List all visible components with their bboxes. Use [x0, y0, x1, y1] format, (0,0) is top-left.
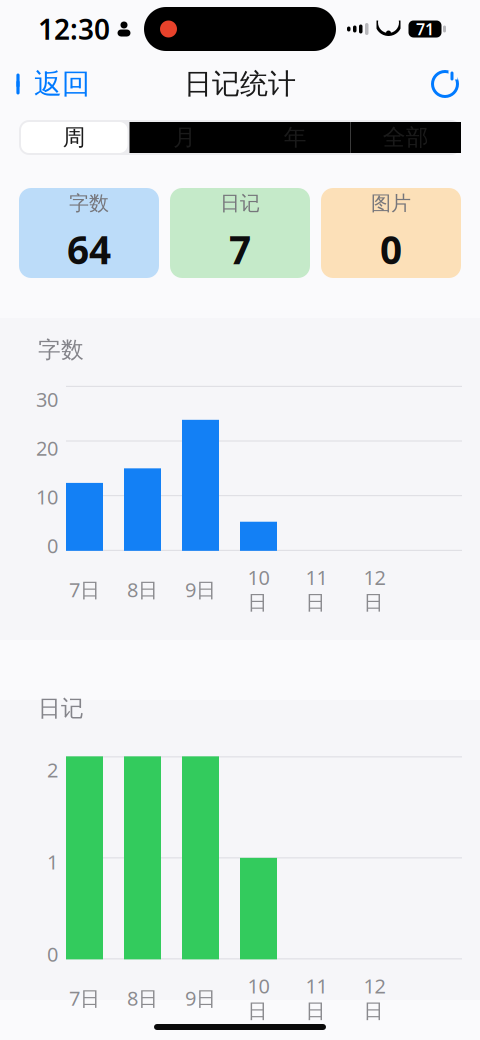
staticText: 20 — [36, 435, 58, 461]
button[interactable]: 周 — [19, 120, 129, 155]
staticText: 7 — [229, 224, 251, 275]
staticText: 月 — [173, 124, 196, 151]
staticText: 11日 — [305, 972, 327, 1023]
staticText: 30 — [36, 386, 58, 412]
staticText: 64 — [67, 224, 111, 275]
staticText: 字数 — [38, 336, 84, 364]
staticText: 7日 — [69, 576, 100, 603]
staticText: 9日 — [185, 985, 216, 1011]
staticText: 8日 — [127, 576, 158, 603]
button[interactable]: 刷新 — [430, 63, 480, 105]
staticText: 字数 — [69, 191, 109, 216]
staticText: 全部 — [383, 124, 429, 151]
staticText: 12日 — [363, 972, 385, 1023]
staticText: 日记 — [220, 191, 260, 216]
staticText: 日记统计 — [184, 67, 296, 101]
staticText: 11日 — [305, 564, 327, 615]
button[interactable]: 返回 — [0, 61, 90, 107]
staticText: 返回 — [34, 67, 90, 101]
button[interactable]: 年 — [240, 120, 350, 155]
staticText: 10日 — [247, 564, 269, 615]
staticText: 周 — [63, 124, 86, 151]
staticText: 10日 — [247, 972, 269, 1023]
staticText: 2 — [47, 756, 58, 783]
staticText: 0 — [380, 224, 402, 275]
button[interactable]: 月 — [129, 120, 240, 155]
staticText: 年 — [284, 124, 307, 151]
staticText: 7日 — [69, 985, 100, 1011]
staticText: 9日 — [185, 576, 216, 603]
staticText: 图片 — [371, 191, 411, 216]
staticText: 日记 — [38, 694, 84, 722]
staticText: 71 — [416, 18, 434, 40]
staticText: 0 — [47, 532, 58, 559]
staticText: 10 — [36, 483, 58, 510]
staticText: 0 — [47, 941, 58, 967]
staticText: 8日 — [127, 985, 158, 1011]
staticText: 1 — [47, 849, 58, 875]
staticText: 12日 — [363, 564, 385, 615]
button[interactable]: 全部 — [350, 120, 461, 155]
staticText: 12:30 — [38, 10, 110, 48]
